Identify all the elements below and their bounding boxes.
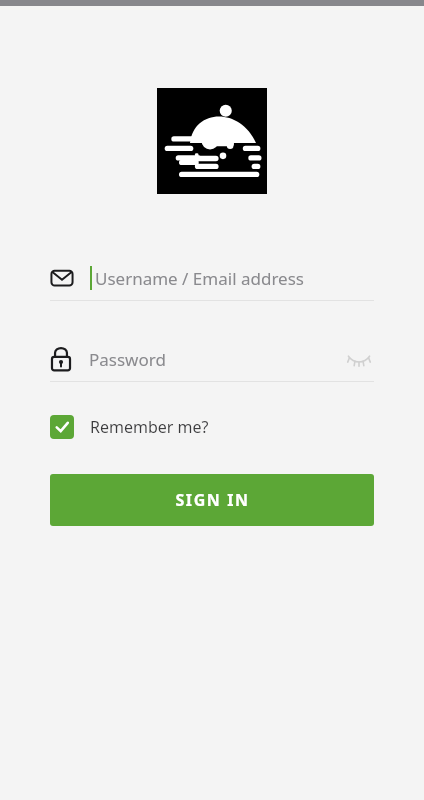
- button[interactable]: Username / Email address: [50, 256, 374, 300]
- button[interactable]: Show password: [344, 344, 374, 374]
- staticText: SIGN IN: [175, 489, 250, 511]
- staticText: Password: [89, 348, 166, 371]
- staticText: Username / Email address: [95, 267, 304, 290]
- button[interactable]: SIGN IN: [50, 474, 374, 526]
- button[interactable]: Password: [50, 337, 374, 381]
- button[interactable]: Remember me?: [50, 410, 209, 444]
- staticText: Remember me?: [90, 416, 209, 438]
